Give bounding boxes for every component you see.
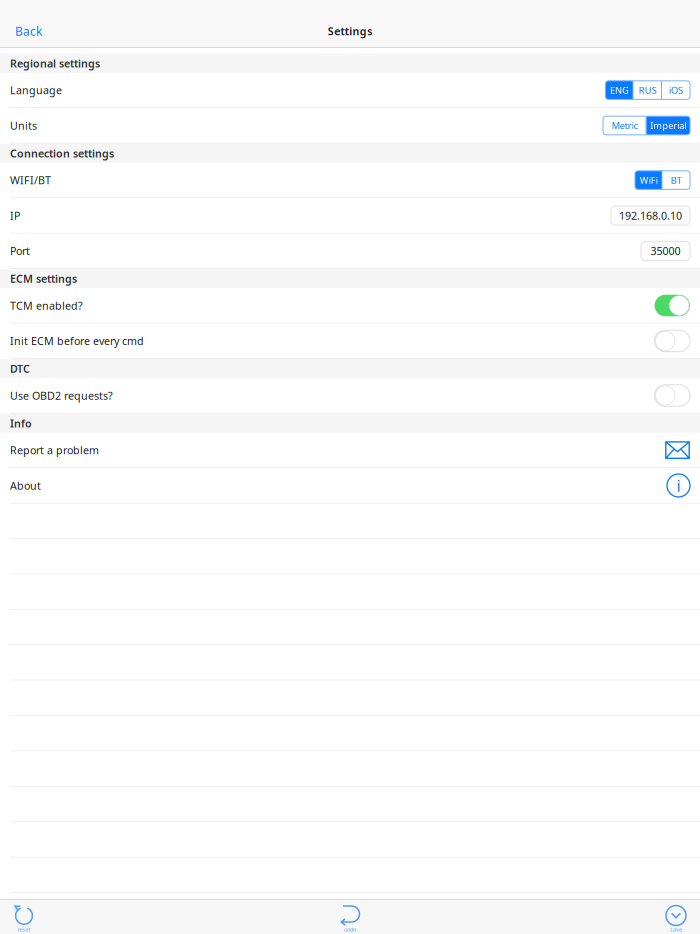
staticText: WiFi <box>640 174 658 186</box>
staticText: Init ECM before every cmd <box>10 334 144 348</box>
staticText: Metric <box>612 119 638 132</box>
button[interactable]: 35000 <box>641 241 690 260</box>
button[interactable]: Toggle off <box>654 330 690 352</box>
staticText: 35000 <box>650 244 680 258</box>
button[interactable]: undo <box>326 900 374 934</box>
staticText: Port <box>10 244 30 258</box>
button[interactable]: WiFi <box>635 171 662 189</box>
staticText: RUS <box>639 84 657 96</box>
staticText: undo <box>344 926 356 933</box>
staticText: Settings <box>328 24 372 38</box>
button[interactable]: About <box>667 474 690 497</box>
button[interactable]: Back <box>0 19 54 43</box>
staticText: reset <box>17 926 30 933</box>
button[interactable]: Metric <box>603 116 646 135</box>
staticText: Connection settings <box>10 146 114 160</box>
staticText: Units <box>10 118 37 133</box>
staticText: Report a problem <box>10 443 99 457</box>
button[interactable]: Report a problem <box>665 441 690 459</box>
staticText: TCM enabled? <box>10 298 83 313</box>
staticText: DTC <box>10 362 30 376</box>
button[interactable]: Toggle on <box>654 295 690 316</box>
button[interactable]: ENG <box>605 81 633 99</box>
button[interactable]: 192.168.0.10 <box>611 206 690 225</box>
staticText: IP <box>10 208 20 223</box>
staticText: Imperial <box>650 119 686 132</box>
button[interactable]: save <box>652 900 700 934</box>
staticText: Use OBD2 requests? <box>10 388 113 403</box>
button[interactable]: BT <box>662 171 690 189</box>
button[interactable]: iOS <box>662 81 690 99</box>
staticText: save <box>670 926 682 933</box>
button[interactable]: Toggle off <box>654 385 690 406</box>
staticText: ECM settings <box>10 272 77 286</box>
button[interactable]: Imperial <box>646 116 690 135</box>
staticText: 192.168.0.10 <box>619 208 682 223</box>
staticText: Language <box>10 83 62 97</box>
staticText: WIFI/BT <box>10 173 51 187</box>
staticText: Info <box>10 416 32 430</box>
staticText: Back <box>15 23 42 39</box>
staticText: Regional settings <box>10 56 100 70</box>
staticText: ENG <box>610 84 629 96</box>
staticText: BT <box>671 174 682 186</box>
staticText: i <box>676 475 680 496</box>
staticText: About <box>10 478 41 493</box>
button[interactable]: reset <box>0 900 48 934</box>
staticText: iOS <box>669 84 683 96</box>
button[interactable]: RUS <box>633 81 662 99</box>
